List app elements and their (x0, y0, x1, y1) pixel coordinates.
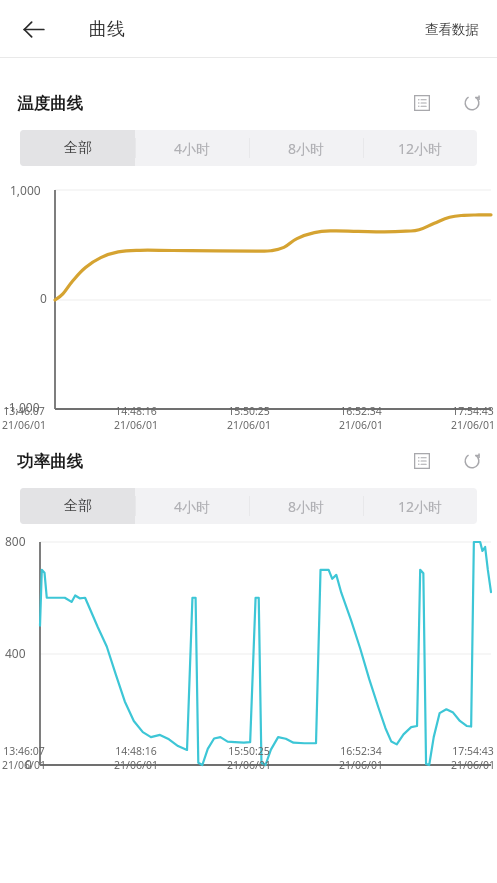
staticText: 查看数据 (425, 21, 479, 38)
staticText: 曲线 (89, 18, 125, 41)
staticText: 21/06/01 (451, 418, 495, 432)
staticText: -1,000 (5, 399, 40, 415)
staticText: 8小时 (288, 497, 325, 516)
button[interactable]: 查看数据 (413, 11, 491, 48)
staticText: 800 (5, 533, 26, 549)
staticText: 14:48:16 (115, 404, 157, 418)
staticText: 21/06/01 (2, 418, 46, 432)
button[interactable]: 12小时 (363, 130, 477, 166)
staticText: 0 (40, 290, 47, 306)
button[interactable]: 4小时 (135, 130, 249, 166)
staticText: 功率曲线 (17, 451, 83, 472)
button[interactable]: 12小时 (363, 488, 477, 524)
button[interactable]: 8小时 (249, 130, 363, 166)
staticText: 全部 (64, 497, 92, 515)
staticText: 全部 (64, 139, 92, 157)
staticText: 4小时 (174, 139, 211, 158)
staticText: 1,000 (10, 182, 41, 198)
staticText: 13:46:07 (3, 744, 45, 758)
staticText: 16:52:34 (340, 744, 382, 758)
button[interactable]: Refresh (455, 446, 489, 476)
staticText: 12小时 (398, 139, 443, 158)
staticText: 21/06/01 (227, 758, 271, 772)
staticText: 16:52:34 (340, 404, 382, 418)
staticText: 15:50:25 (228, 744, 270, 758)
staticText: 0 (25, 756, 32, 772)
button[interactable]: 全部 (20, 130, 135, 166)
staticText: 400 (5, 645, 26, 661)
staticText: 21/06/01 (114, 758, 158, 772)
button[interactable]: 全部 (20, 488, 135, 524)
staticText: 21/06/01 (114, 418, 158, 432)
staticText: 21/06/01 (2, 758, 46, 772)
button[interactable]: Show data list (405, 88, 439, 118)
staticText: 8小时 (288, 139, 325, 158)
staticText: 12小时 (398, 497, 443, 516)
button[interactable]: Show data list (405, 446, 439, 476)
staticText: 15:50:25 (228, 404, 270, 418)
button[interactable]: 8小时 (249, 488, 363, 524)
button[interactable]: Back (10, 6, 56, 52)
staticText: 21/06/01 (451, 758, 495, 772)
staticText: 21/06/01 (227, 418, 271, 432)
staticText: 4小时 (174, 497, 211, 516)
staticText: 17:54:43 (452, 744, 494, 758)
staticText: 13:46:07 (3, 404, 45, 418)
staticText: 14:48:16 (115, 744, 157, 758)
button[interactable]: Refresh (455, 88, 489, 118)
staticText: 21/06/01 (339, 418, 383, 432)
button[interactable]: 4小时 (135, 488, 249, 524)
staticText: 17:54:43 (452, 404, 494, 418)
staticText: 21/06/01 (339, 758, 383, 772)
staticText: 温度曲线 (17, 93, 83, 114)
